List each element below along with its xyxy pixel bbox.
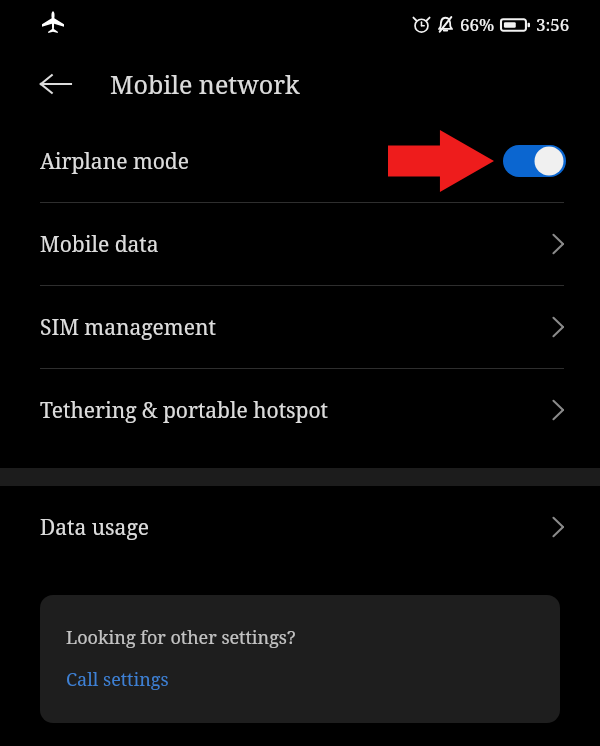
staticText: 66% [460, 13, 495, 36]
staticText: 3:56 [536, 13, 570, 36]
staticText: Mobile network [110, 67, 300, 101]
button[interactable]: Mobile data [0, 203, 600, 285]
button[interactable]: Call settings [66, 667, 169, 692]
staticText: Mobile data [40, 230, 159, 259]
button[interactable]: Airplane mode [0, 120, 600, 202]
staticText: Tethering & portable hotspot [40, 396, 328, 425]
button[interactable]: SIM management [0, 286, 600, 368]
staticText: Looking for other settings? [66, 625, 296, 650]
staticText: Data usage [40, 513, 149, 542]
button[interactable]: Airplane mode on [503, 145, 566, 177]
button[interactable]: Data usage [0, 486, 600, 568]
button[interactable]: Back [32, 61, 78, 107]
staticText: SIM management [40, 313, 216, 342]
staticText: Airplane mode [40, 147, 189, 176]
button[interactable]: Tethering & portable hotspot [0, 369, 600, 451]
staticText: Call settings [66, 667, 169, 692]
